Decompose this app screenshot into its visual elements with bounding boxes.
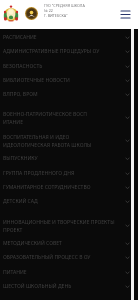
button[interactable]: ВОЕННО-ПАТРИОТИЧЕСКОЕ ВОСП ИТАНИЕ [0,107,138,128]
staticText: ГУМАНИТАРНОЕ СОТРУДНИЧЕСТВО [3,184,116,191]
button[interactable]: ШЕСТОЙ ШКОЛЬНЫЙ ДЕНЬ [0,279,138,293]
staticText: ОБРАЗОВАТЕЛЬНЫЙ ПРОЦЕСС В ОУ [3,254,116,261]
staticText: РАСПИСАНИЕ [3,34,116,41]
button[interactable]: ВОСПИТАТЕЛЬНАЯ И ИДЕО ИДЕОЛОГИЧЕСКАЯ РАБ… [0,130,138,151]
button[interactable]: АДМИНИСТРАТИВНЫЕ ПРОЦЕДУРЫ ОУ [0,44,138,58]
button[interactable]: ПИТАНИЕ [0,265,138,279]
button[interactable]: ГУМАНИТАРНОЕ СОТРУДНИЧЕСТВО [0,180,138,194]
staticText: БЕЗОПАСНОСТЬ [3,63,116,70]
staticText: ПИТАНИЕ [3,269,116,276]
staticText: ДЕТСКИЙ САД [3,198,116,205]
button[interactable]: РАСПИСАНИЕ [0,30,138,44]
staticText: АДМИНИСТРАТИВНЫЕ ПРОЦЕДУРЫ ОУ [3,48,116,55]
button[interactable]: Menu [118,7,133,22]
staticText: ВЛПРО, ВРОМ [3,91,116,98]
button[interactable]: ДЕТСКИЙ САД [0,194,138,208]
button[interactable]: БИБЛИОТЕЧНЫЕ НОВОСТИ [0,73,138,87]
staticText: БИБЛИОТЕЧНЫЕ НОВОСТИ [3,77,116,84]
button[interactable]: МЕТОДИЧЕСКИЙ СОВЕТ [0,236,138,250]
staticText: ИННОВАЦИОННЫЕ И ТВОРЧЕСКИЕ ПРОЕКТЫ ПРОЕК… [3,219,116,233]
button[interactable]: БЕЗОПАСНОСТЬ [0,59,138,73]
staticText: ГУО "СРЕДНЯЯ ШКОЛА № 22 Г. ВИТЕБСКА" [44,3,85,18]
button[interactable]: ВЫПУСКНИКУ [0,151,138,165]
staticText: ГРУППА ПРОДЛЕННОГО ДНЯ [3,170,116,177]
staticText: ШЕСТОЙ ШКОЛЬНЫЙ ДЕНЬ [3,283,116,290]
staticText: ВЫПУСКНИКУ [3,155,116,162]
staticText: МЕТОДИЧЕСКИЙ СОВЕТ [3,240,116,247]
button[interactable]: ИННОВАЦИОННЫЕ И ТВОРЧЕСКИЕ ПРОЕКТЫ ПРОЕК… [0,215,138,236]
staticText: ВОСПИТАТЕЛЬНАЯ И ИДЕО ИДЕОЛОГИЧЕСКАЯ РАБ… [3,134,116,148]
staticText: ВОЕННО-ПАТРИОТИЧЕСКОЕ ВОСП ИТАНИЕ [3,111,116,125]
button[interactable]: ГРУППА ПРОДЛЕННОГО ДНЯ [0,166,138,180]
button[interactable]: ВЛПРО, ВРОМ [0,87,138,101]
button[interactable]: ОБРАЗОВАТЕЛЬНЫЙ ПРОЦЕСС В ОУ [0,250,138,264]
